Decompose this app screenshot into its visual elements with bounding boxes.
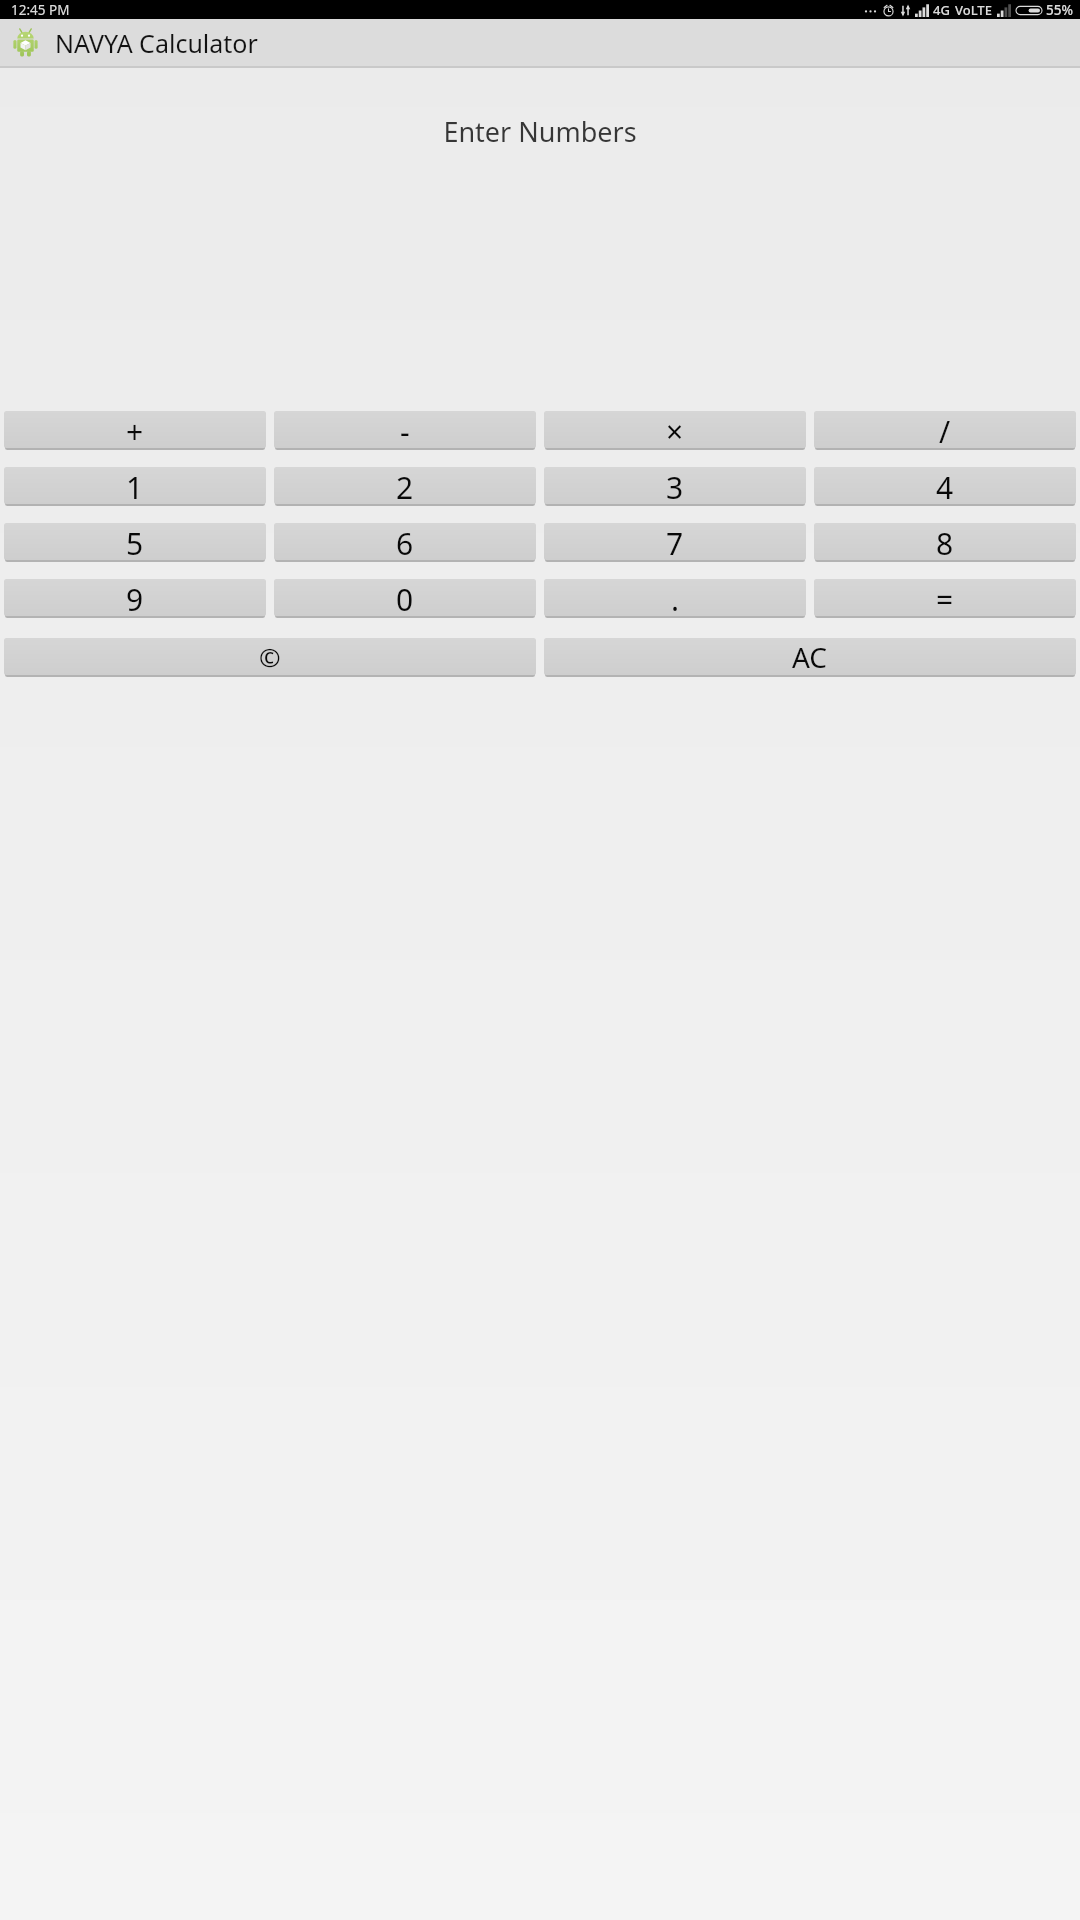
staticText: 6 — [396, 523, 414, 560]
button[interactable]: = — [814, 579, 1076, 616]
staticText: 9 — [126, 579, 144, 616]
staticText: - — [400, 411, 410, 448]
staticText: 3 — [666, 467, 684, 504]
staticText: VoLTE — [955, 1, 992, 19]
staticText: / — [939, 411, 951, 448]
button[interactable]: 2 — [274, 467, 536, 504]
button[interactable]: - — [274, 411, 536, 448]
staticText: 5 — [126, 523, 144, 560]
staticText: 12:45 PM — [11, 1, 70, 19]
staticText: © — [259, 639, 281, 674]
button[interactable]: 9 — [4, 579, 266, 616]
button[interactable]: 0 — [274, 579, 536, 616]
button[interactable]: 4 — [814, 467, 1076, 504]
button[interactable]: . — [544, 579, 806, 616]
button[interactable]: 8 — [814, 523, 1076, 560]
staticText: = — [936, 579, 954, 616]
button[interactable]: 5 — [4, 523, 266, 560]
staticText: 1 — [126, 467, 144, 504]
staticText: 8 — [936, 523, 954, 560]
button[interactable]: 7 — [544, 523, 806, 560]
staticText: . — [671, 579, 680, 616]
staticText: Enter Numbers — [0, 113, 1080, 150]
button[interactable]: / — [814, 411, 1076, 448]
button[interactable]: 1 — [4, 467, 266, 504]
staticText: 2 — [396, 467, 414, 504]
button[interactable]: 3 — [544, 467, 806, 504]
staticText: × — [666, 411, 684, 448]
button[interactable]: 6 — [274, 523, 536, 560]
button[interactable]: + — [4, 411, 266, 448]
staticText: 0 — [396, 579, 414, 616]
staticText: 4G — [933, 1, 950, 19]
staticText: 4 — [936, 467, 954, 504]
button[interactable]: Clear entry — [4, 638, 536, 675]
button[interactable]: AC — [544, 638, 1076, 675]
button[interactable]: × — [544, 411, 806, 448]
staticText: AC — [792, 638, 828, 675]
staticText: + — [126, 411, 144, 448]
staticText: 55% — [1046, 1, 1073, 19]
staticText: NAVYA Calculator — [55, 26, 258, 60]
staticText: 7 — [666, 523, 684, 560]
